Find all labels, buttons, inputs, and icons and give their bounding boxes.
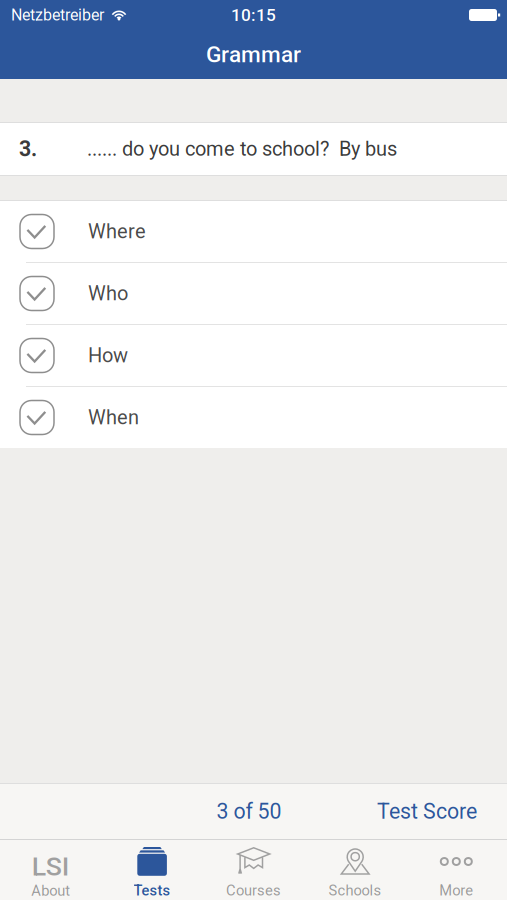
staticText: 3. xyxy=(19,136,37,161)
staticText: More xyxy=(439,882,473,899)
staticText: About xyxy=(31,882,70,899)
button[interactable]: How xyxy=(0,325,507,386)
staticText: Netzbetreiber xyxy=(11,6,104,24)
button[interactable]: More xyxy=(406,840,507,900)
button[interactable]: Schools xyxy=(304,840,406,900)
staticText: 3 of 50 xyxy=(216,799,281,824)
staticText: Courses xyxy=(226,882,281,899)
staticText: When xyxy=(88,406,139,429)
staticText: 10:15 xyxy=(231,5,276,25)
button[interactable]: Courses xyxy=(203,840,304,900)
staticText: Grammar xyxy=(206,41,301,68)
staticText: Schools xyxy=(328,882,381,899)
button[interactable]: LSI xyxy=(0,840,101,900)
staticText: LSI xyxy=(32,851,70,882)
staticText: Where xyxy=(88,220,146,243)
button[interactable]: When xyxy=(0,387,507,448)
button[interactable]: Tests xyxy=(101,840,203,900)
staticText: How xyxy=(88,344,128,367)
staticText: Tests xyxy=(134,882,171,899)
button[interactable]: Who xyxy=(0,263,507,324)
staticText: ...... do you come to school? By bus xyxy=(87,137,397,161)
button[interactable]: Where xyxy=(0,201,507,262)
button[interactable]: Test Score xyxy=(377,799,507,824)
staticText: Test Score xyxy=(377,799,477,824)
staticText: Who xyxy=(88,282,128,305)
